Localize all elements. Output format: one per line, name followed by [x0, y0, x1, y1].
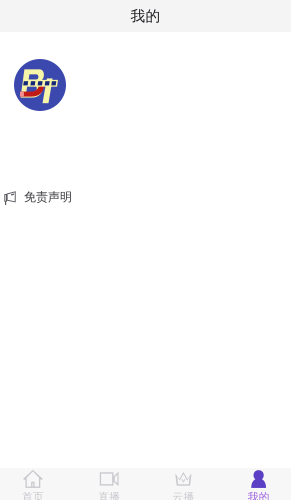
- button[interactable]: 首页: [0, 464, 73, 500]
- staticText: 我的: [248, 490, 270, 500]
- staticText: 云播: [172, 490, 194, 500]
- button[interactable]: 直播: [73, 464, 146, 500]
- staticText: 首页: [22, 490, 44, 500]
- staticText: 我的: [130, 7, 160, 25]
- staticText: 直播: [98, 490, 120, 500]
- button[interactable]: 免责声明: [0, 111, 291, 205]
- button[interactable]: 云播: [145, 464, 218, 500]
- staticText: 免责声明: [24, 190, 72, 204]
- button[interactable]: 我的: [218, 464, 291, 500]
